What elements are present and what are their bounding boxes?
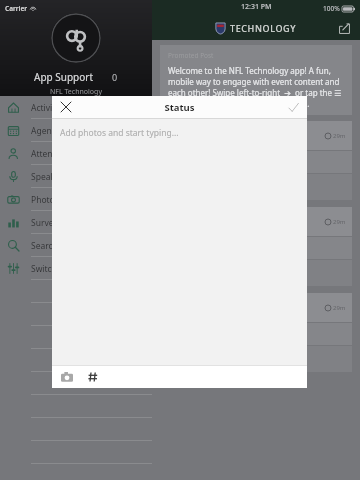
staticText: 29m bbox=[333, 132, 346, 140]
staticText: Switch bbox=[31, 263, 57, 275]
staticText: Agenda bbox=[31, 125, 62, 137]
staticText: Welcome to the NFL Technology app! A fun… bbox=[168, 65, 344, 109]
button[interactable] bbox=[0, 349, 152, 372]
button[interactable]: Add photo bbox=[58, 368, 76, 386]
staticText: Surveys bbox=[31, 217, 62, 229]
button[interactable]: Close bbox=[57, 98, 75, 116]
staticText: 0 bbox=[112, 71, 118, 83]
button[interactable]: Promoted Post bbox=[160, 45, 352, 115]
button[interactable]: Add photos and start typing... bbox=[52, 119, 307, 365]
staticText: Speakers bbox=[31, 171, 68, 183]
staticText: NFL Technology bbox=[50, 87, 102, 96]
button[interactable]: Agenda bbox=[0, 119, 152, 142]
button[interactable] bbox=[0, 303, 152, 326]
staticText: Attendees bbox=[31, 148, 72, 160]
staticText: Carrier bbox=[5, 4, 28, 13]
staticText: 100% bbox=[323, 4, 340, 13]
button[interactable] bbox=[0, 326, 152, 349]
staticText: Search bbox=[31, 240, 58, 252]
staticText: TECHNOLOGY bbox=[230, 22, 297, 34]
button[interactable]: Attendees bbox=[0, 142, 152, 165]
button[interactable] bbox=[0, 395, 152, 418]
staticText: Photos bbox=[31, 194, 59, 206]
button[interactable]: Surveys bbox=[0, 211, 152, 234]
button[interactable] bbox=[0, 372, 152, 395]
staticText: 12:31 PM bbox=[241, 2, 272, 12]
staticText: Activity bbox=[31, 102, 60, 114]
button[interactable]: Post status bbox=[284, 98, 302, 116]
button[interactable] bbox=[0, 418, 152, 441]
button[interactable]: 29m bbox=[160, 121, 352, 207]
button[interactable]: Add hashtag bbox=[84, 368, 102, 386]
button[interactable]: 29m bbox=[160, 293, 352, 379]
staticText: 29m bbox=[333, 304, 346, 312]
button[interactable]: Speakers bbox=[0, 165, 152, 188]
button[interactable] bbox=[51, 13, 101, 63]
button[interactable]: 29m bbox=[160, 207, 352, 293]
button[interactable]: Search bbox=[0, 234, 152, 257]
button[interactable]: Compose post bbox=[334, 18, 354, 38]
staticText: 29m bbox=[333, 218, 346, 226]
button[interactable] bbox=[0, 280, 152, 303]
button[interactable]: Photos bbox=[0, 188, 152, 211]
button[interactable]: Activity bbox=[0, 96, 152, 119]
staticText: Status bbox=[164, 101, 195, 114]
button[interactable] bbox=[0, 441, 152, 464]
staticText: App Support bbox=[34, 70, 94, 84]
staticText: Add photos and start typing... bbox=[60, 127, 179, 139]
button[interactable]: Switch bbox=[0, 257, 152, 280]
staticText: Promoted Post bbox=[168, 51, 214, 60]
